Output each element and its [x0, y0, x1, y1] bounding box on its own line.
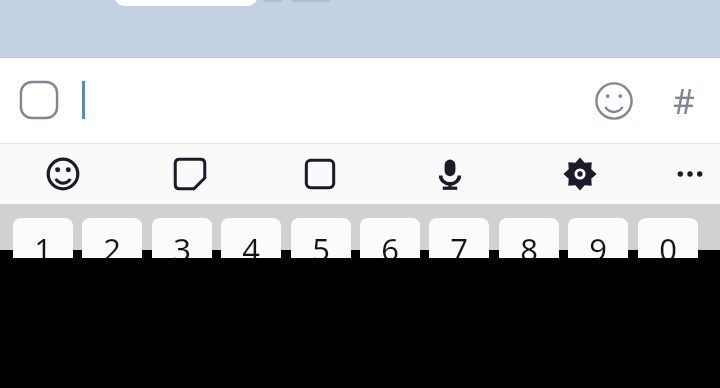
button[interactable]: More options	[658, 147, 720, 201]
staticText: 8	[520, 228, 538, 258]
button[interactable]: 5	[291, 218, 351, 258]
staticText: 6	[381, 228, 399, 258]
button[interactable]: Attach	[16, 77, 62, 123]
staticText: 9	[589, 228, 607, 258]
button[interactable]: Emoji	[588, 75, 640, 127]
button[interactable]: 2	[82, 218, 142, 258]
button[interactable]: Emoji	[31, 147, 95, 201]
button[interactable]: 0	[638, 218, 698, 258]
button[interactable]: Stickers	[158, 147, 222, 201]
button[interactable]: 3	[152, 218, 212, 258]
button[interactable]: 8	[499, 218, 559, 258]
button[interactable]: 6	[360, 218, 420, 258]
staticText: 0	[659, 228, 677, 258]
button[interactable]: 9	[568, 218, 628, 258]
staticText: #	[673, 78, 695, 124]
staticText: 7	[450, 228, 468, 258]
button[interactable]: 7	[429, 218, 489, 258]
staticText: 2	[103, 228, 121, 258]
button[interactable]: GIF	[288, 147, 352, 201]
button[interactable]: 1	[13, 218, 73, 258]
staticText: 1	[34, 228, 52, 258]
button[interactable]: Settings	[548, 147, 612, 201]
button[interactable]: Hashtag	[658, 75, 710, 127]
button[interactable]: Voice message	[418, 147, 482, 201]
staticText: 4	[242, 228, 260, 258]
button[interactable]: 4	[221, 218, 281, 258]
staticText: 5	[312, 228, 330, 258]
button[interactable]: Message input	[76, 69, 576, 131]
staticText: 3	[173, 228, 191, 258]
